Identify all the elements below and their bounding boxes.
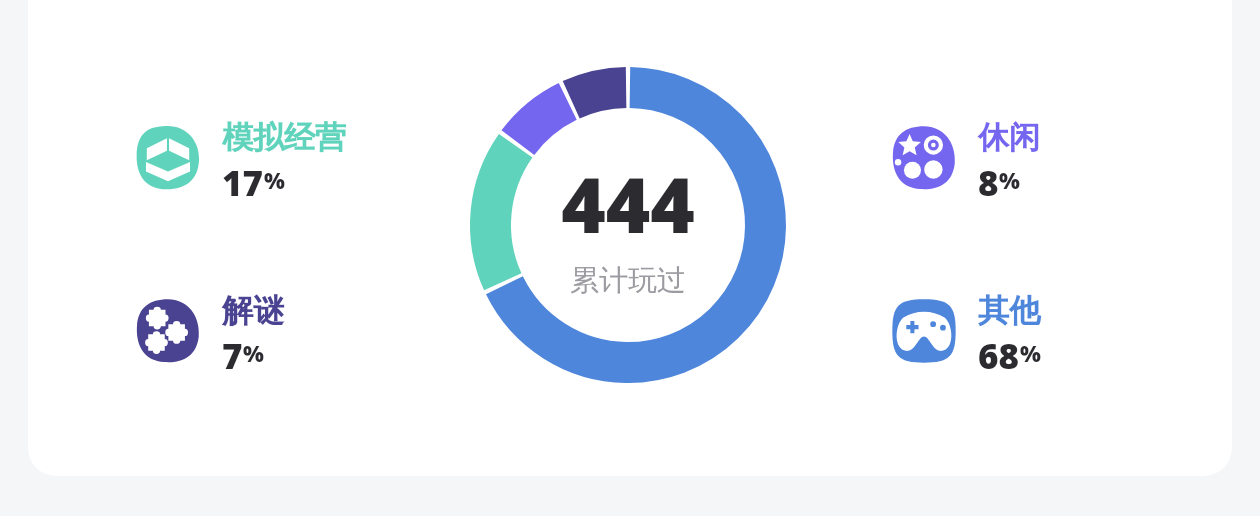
other: 休闲 — [888, 122, 960, 194]
staticText: 其他 — [978, 291, 1040, 330]
staticText: 累计玩过 — [570, 262, 686, 299]
other: 解谜 — [132, 295, 204, 367]
staticText: % — [243, 338, 264, 368]
other: 模拟经营 — [132, 122, 204, 194]
staticText: 休闲 — [978, 118, 1040, 157]
staticText: % — [1020, 338, 1041, 368]
button[interactable]: 休闲 — [888, 118, 1188, 198]
staticText: % — [999, 165, 1020, 195]
staticText: 7 — [222, 332, 243, 371]
button[interactable]: 模拟经营 — [132, 118, 432, 198]
staticText: 模拟经营 — [222, 118, 346, 157]
staticText: % — [264, 165, 285, 195]
staticText: 444 — [561, 152, 695, 256]
button[interactable]: 其他 — [888, 291, 1188, 371]
staticText: 解谜 — [222, 291, 284, 330]
button[interactable]: 解谜 — [132, 291, 432, 371]
other: 其他 — [888, 295, 960, 367]
staticText: 8 — [978, 159, 999, 198]
staticText: 68 — [978, 332, 1020, 371]
staticText: 17 — [222, 159, 264, 198]
